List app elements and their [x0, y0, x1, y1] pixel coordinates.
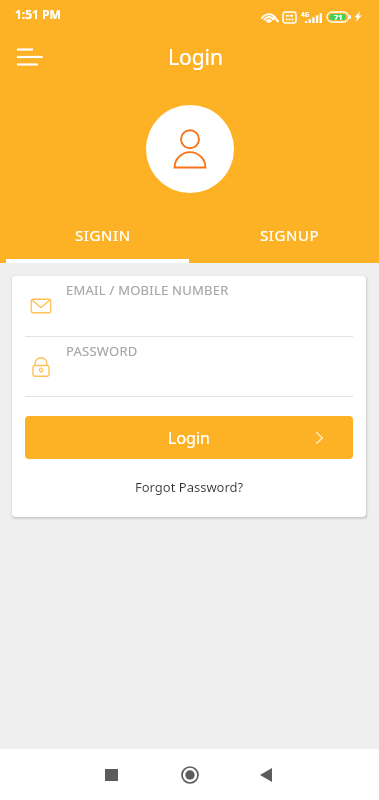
staticText: SIGNIN — [75, 225, 131, 245]
button[interactable]: Login — [25, 416, 353, 459]
staticText: Login — [168, 427, 210, 449]
button[interactable]: EMAIL / MOBILE NUMBER — [12, 276, 366, 336]
button[interactable]: Back — [229, 749, 303, 800]
button[interactable]: Home — [150, 749, 229, 800]
button[interactable]: SIGNIN — [0, 215, 189, 263]
button[interactable]: SIGNUP — [189, 215, 379, 263]
staticText: 4G — [301, 10, 310, 19]
staticText: SIGNUP — [260, 225, 320, 245]
button[interactable]: Forgot Password? — [123, 473, 256, 501]
staticText: Login — [168, 43, 224, 72]
staticText: 71 — [334, 12, 343, 22]
staticText: PASSWORD — [66, 342, 138, 360]
staticText: 1:51 PM — [15, 6, 61, 22]
button[interactable]: Menu — [9, 38, 51, 76]
staticText: EMAIL / MOBILE NUMBER — [66, 281, 229, 299]
button[interactable]: Recents — [72, 749, 150, 800]
button[interactable]: PASSWORD — [12, 337, 366, 396]
staticText: Forgot Password? — [135, 478, 244, 496]
